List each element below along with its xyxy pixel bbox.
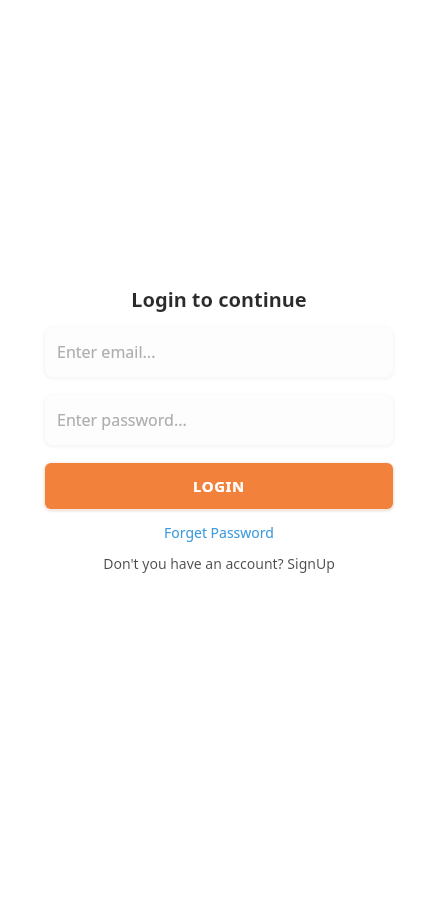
staticText: Login to continue	[131, 286, 307, 313]
button[interactable]: Don't you have an account? SignUp	[97, 552, 341, 575]
staticText: Forget Password	[164, 523, 274, 542]
button[interactable]: Forget Password	[158, 521, 280, 544]
button[interactable]: Enter password...	[45, 395, 393, 445]
staticText: Don't you have an account? SignUp	[103, 554, 335, 573]
staticText: Enter email...	[57, 341, 156, 363]
staticText: LOGIN	[193, 476, 245, 496]
button[interactable]: Enter email...	[45, 327, 393, 377]
staticText: Enter password...	[57, 409, 187, 431]
button[interactable]: LOGIN	[45, 463, 393, 509]
